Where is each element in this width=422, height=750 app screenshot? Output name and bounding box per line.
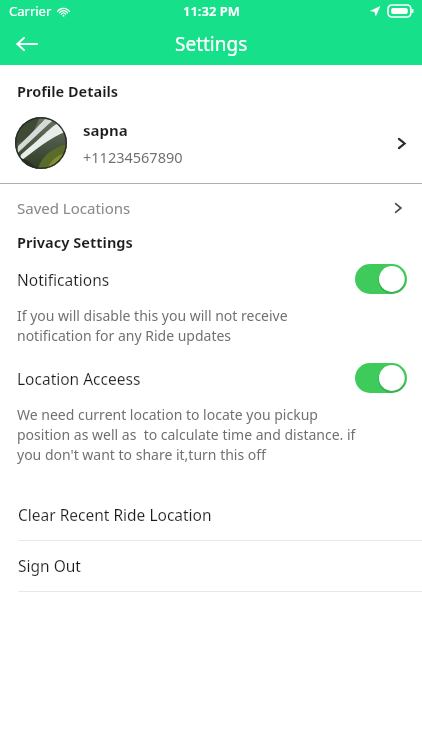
button[interactable]: sapna (0, 111, 422, 175)
button[interactable]: Sign Out (0, 541, 422, 591)
button[interactable]: Toggle (355, 264, 407, 294)
staticText: Carrier (9, 2, 52, 20)
button[interactable]: Saved Locations (0, 184, 422, 232)
staticText: sapna (83, 120, 128, 140)
staticText: Location Acceess (17, 368, 141, 389)
button[interactable]: Toggle (355, 363, 407, 393)
staticText: Notifications (17, 269, 110, 290)
staticText: Sign Out (18, 555, 81, 576)
button[interactable]: Clear Recent Ride Location (0, 490, 422, 540)
staticText: Profile Details (17, 81, 119, 101)
staticText: +11234567890 (83, 147, 183, 167)
staticText: 11:32 PM (183, 2, 240, 20)
staticText: If you will disable this you will not re… (17, 306, 362, 345)
staticText: Settings (175, 31, 248, 57)
staticText: Clear Recent Ride Location (18, 504, 212, 525)
staticText: We need current location to locate you p… (17, 405, 362, 464)
staticText: Privacy Settings (17, 232, 133, 252)
button[interactable]: Back (8, 25, 46, 63)
staticText: Saved Locations (17, 198, 131, 218)
